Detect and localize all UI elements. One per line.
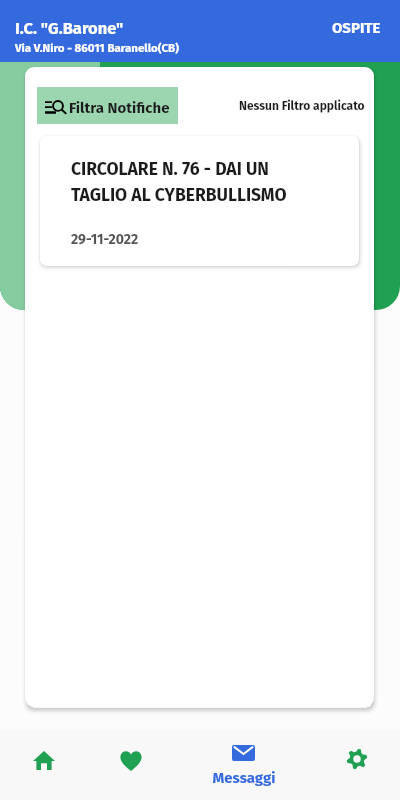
staticText: Nessun Filtro applicato (239, 99, 365, 113)
button[interactable]: Home (0, 730, 87, 800)
button[interactable]: Filtra Notifiche (37, 87, 178, 124)
button[interactable]: OSPITE (317, 11, 400, 45)
button[interactable]: CIRCOLARE N. 76 - DAI UN TAGLIO AL CYBER… (40, 136, 359, 266)
staticText: I.C. "G.Barone" (15, 19, 124, 39)
staticText: OSPITE (332, 19, 381, 37)
button[interactable]: Messaggi (174, 730, 313, 800)
staticText: Via V.Niro - 86011 Baranello(CB) (15, 41, 179, 55)
button[interactable]: Impostazioni (313, 730, 400, 800)
staticText: CIRCOLARE N. 76 - DAI UN TAGLIO AL CYBER… (71, 159, 323, 206)
staticText: Messaggi (212, 769, 276, 787)
staticText: Filtra Notifiche (69, 99, 170, 117)
staticText: 29-11-2022 (71, 231, 139, 248)
button[interactable]: Preferiti (87, 730, 174, 800)
